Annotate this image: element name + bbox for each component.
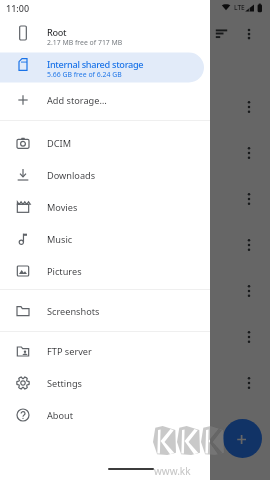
button[interactable]: Internal shared storage (0, 54, 210, 86)
staticText: Downloads (47, 169, 96, 182)
staticText: About (47, 409, 74, 422)
button[interactable]: Pictures (0, 255, 210, 287)
button[interactable]: Add storage… (0, 84, 210, 116)
button[interactable]: Root (0, 22, 210, 54)
button[interactable]: FTP server (0, 335, 210, 367)
staticText: 5.66 GB free of 6.24 GB (47, 70, 122, 79)
button[interactable]: Item menu (241, 421, 257, 437)
staticText: Pictures (47, 265, 82, 278)
button[interactable]: Item menu (241, 237, 257, 253)
staticText: Add storage… (47, 94, 107, 107)
staticText: 2.17 MB free of 717 MB (47, 38, 123, 47)
button[interactable]: Screenshots (0, 295, 210, 327)
button[interactable]: Movies (0, 191, 210, 223)
button[interactable]: More options (238, 22, 260, 44)
button[interactable]: About (0, 399, 210, 431)
staticText: Screenshots (47, 305, 100, 318)
button[interactable]: Sort (207, 22, 231, 46)
staticText: Root (47, 26, 67, 39)
button[interactable]: Item menu (241, 191, 257, 207)
button[interactable]: Item menu (241, 99, 257, 115)
button[interactable]: Music (0, 223, 210, 255)
staticText: DCIM (47, 137, 71, 150)
staticText: FTP server (47, 345, 92, 358)
button[interactable]: Add (223, 419, 262, 458)
button[interactable]: Item menu (241, 329, 257, 345)
button[interactable]: Item menu (241, 145, 257, 161)
button[interactable]: DCIM (0, 127, 210, 159)
button[interactable]: Item menu (241, 375, 257, 391)
staticText: Settings (47, 377, 82, 390)
button[interactable]: Settings (0, 367, 210, 399)
staticText: LTE (234, 3, 245, 12)
button[interactable]: Downloads (0, 159, 210, 191)
staticText: Internal shared storage (47, 58, 144, 71)
staticText: www.kk (154, 464, 191, 478)
button[interactable]: Item menu (241, 283, 257, 299)
staticText: 11:00 (6, 2, 30, 14)
staticText: Movies (47, 201, 78, 214)
staticText: Music (47, 233, 73, 246)
